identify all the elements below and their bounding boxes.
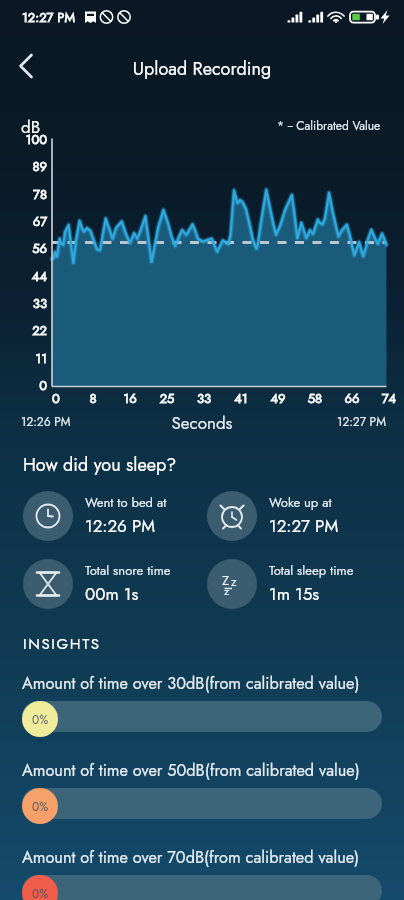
staticText: 89	[0, 157, 47, 176]
staticText: 56	[0, 239, 47, 258]
staticText: dB	[21, 115, 41, 140]
staticText: 33	[0, 294, 47, 313]
staticText: 0%	[32, 885, 49, 900]
staticText: 11	[0, 349, 47, 368]
staticText: 12:27 PM	[22, 8, 75, 27]
button[interactable]: Amount of time over 50dB(from calibrated…	[0, 758, 404, 830]
staticText: Total sleep time	[269, 561, 354, 580]
staticText: Went to bed at	[85, 493, 167, 512]
staticText: Seconds	[0, 411, 404, 436]
staticText: Amount of time over 70dB(from calibrated…	[22, 846, 360, 870]
staticText: 12:27 PM	[269, 514, 339, 539]
staticText: z	[224, 583, 230, 599]
staticText: 100	[0, 130, 47, 149]
button[interactable]: Z	[207, 559, 379, 609]
staticText: 67	[0, 212, 47, 231]
staticText: Z	[222, 571, 230, 590]
staticText: 0%	[32, 711, 49, 728]
staticText: 0	[41, 389, 71, 408]
staticText: Amount of time over 50dB(from calibrated…	[22, 759, 360, 783]
staticText: 0%	[32, 798, 49, 815]
staticText: * -- Calibrated Value	[277, 117, 381, 134]
staticText: 66	[337, 389, 367, 408]
button[interactable]: Amount of time over 70dB(from calibrated…	[0, 845, 404, 900]
staticText: 49	[263, 389, 293, 408]
staticText: 78	[0, 185, 47, 204]
staticText: 44	[0, 267, 47, 286]
button[interactable]: Back	[3, 44, 47, 88]
staticText: Amount of time over 30dB(from calibrated…	[22, 672, 360, 696]
staticText: 16	[115, 389, 145, 408]
staticText: Total snore time	[85, 561, 171, 580]
staticText: 12:26 PM	[21, 413, 71, 430]
staticText: 58	[300, 389, 330, 408]
staticText: 8	[78, 389, 108, 408]
staticText: Upload Recording	[0, 56, 404, 82]
staticText: 00m 1s	[85, 582, 139, 607]
staticText: 33	[189, 389, 219, 408]
button[interactable]: Total snore time	[23, 559, 195, 609]
staticText: 74	[374, 389, 404, 408]
staticText: 12:27 PM	[337, 413, 386, 430]
button[interactable]: Woke up at	[207, 491, 379, 541]
staticText: Woke up at	[269, 493, 332, 512]
staticText: 1m 15s	[269, 582, 320, 607]
staticText: INSIGHTS	[23, 633, 101, 655]
staticText: 41	[226, 389, 256, 408]
button[interactable]: Went to bed at	[23, 491, 195, 541]
staticText: 0	[0, 376, 47, 395]
button[interactable]: Amount of time over 30dB(from calibrated…	[0, 671, 404, 743]
staticText: z	[231, 573, 237, 590]
staticText: 25	[152, 389, 182, 408]
staticText: How did you sleep?	[23, 452, 177, 478]
staticText: 22	[0, 321, 47, 340]
staticText: 12:26 PM	[85, 514, 156, 539]
